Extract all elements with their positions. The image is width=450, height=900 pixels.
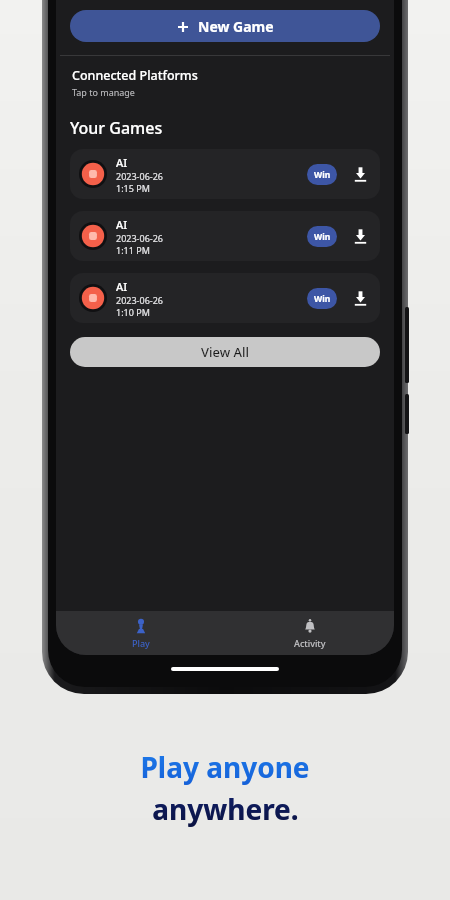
- staticText: Play: [132, 637, 150, 649]
- staticText: 2023-06-26: [116, 232, 163, 244]
- button[interactable]: Win: [307, 164, 337, 185]
- staticText: 1:10 PM: [116, 306, 150, 318]
- staticText: AI: [116, 217, 128, 232]
- button[interactable]: AI: [70, 273, 380, 323]
- staticText: AI: [116, 279, 128, 294]
- button[interactable]: AI: [70, 149, 380, 199]
- staticText: Activity: [294, 637, 326, 649]
- staticText: Win: [314, 231, 331, 243]
- button[interactable]: Download game: [349, 287, 371, 309]
- staticText: 2023-06-26: [116, 294, 163, 306]
- staticText: Your Games: [70, 117, 163, 139]
- button[interactable]: Play: [56, 611, 225, 655]
- button[interactable]: AI: [70, 211, 380, 261]
- button[interactable]: New Game: [70, 10, 380, 42]
- staticText: AI: [116, 155, 128, 170]
- staticText: anywhere.: [152, 790, 299, 828]
- button[interactable]: Activity: [225, 611, 394, 655]
- button[interactable]: Win: [307, 288, 337, 309]
- staticText: 2023-06-26: [116, 170, 163, 182]
- staticText: Win: [314, 169, 331, 181]
- staticText: Connected Platforms: [72, 67, 198, 84]
- button[interactable]: Download game: [349, 225, 371, 247]
- staticText: View All: [201, 343, 250, 361]
- button[interactable]: View All: [70, 337, 380, 367]
- staticText: 1:11 PM: [116, 244, 150, 256]
- staticText: 1:15 PM: [116, 182, 150, 194]
- button[interactable]: Connected Platforms: [56, 56, 394, 104]
- button[interactable]: Win: [307, 226, 337, 247]
- staticText: New Game: [198, 17, 274, 36]
- staticText: Play anyone: [140, 748, 310, 786]
- staticText: Tap to manage: [72, 86, 135, 98]
- button[interactable]: Download game: [349, 163, 371, 185]
- staticText: Win: [314, 293, 331, 305]
